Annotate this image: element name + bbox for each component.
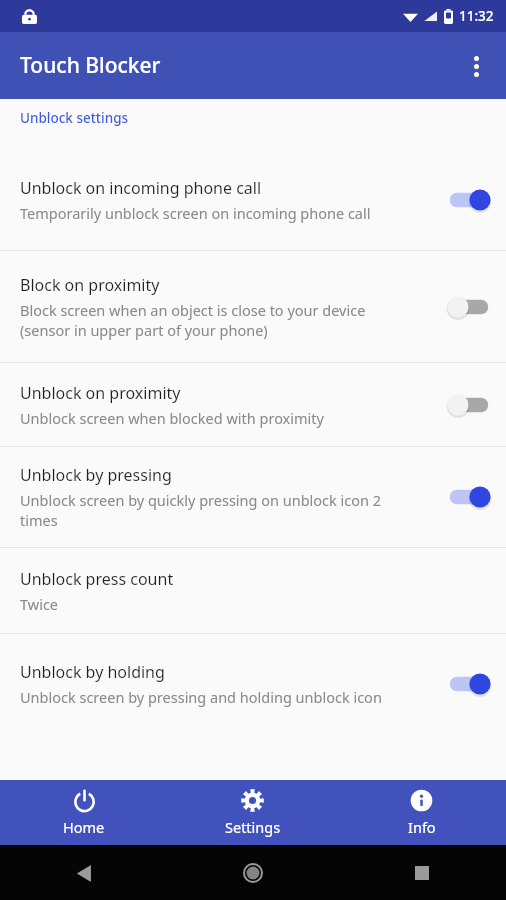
staticText: Unblock press count — [20, 568, 174, 590]
staticText: Unblock on proximity — [20, 382, 181, 404]
staticText: Block screen when an object is close to … — [20, 300, 418, 340]
staticText: Unblock screen when blocked with proximi… — [20, 408, 324, 428]
button[interactable]: Settings — [168, 780, 337, 845]
staticText: Unblock screen by pressing and holding u… — [20, 687, 382, 707]
button[interactable] — [432, 469, 506, 525]
button[interactable] — [432, 377, 506, 433]
button[interactable]: Back — [62, 851, 106, 895]
button[interactable] — [432, 656, 506, 712]
button[interactable]: Unblock by holding — [0, 634, 506, 734]
button[interactable]: Recents — [400, 851, 444, 895]
staticText: Settings — [225, 817, 281, 837]
button[interactable]: Block on proximity — [0, 251, 506, 362]
button[interactable]: Unblock press count — [0, 548, 506, 633]
button[interactable] — [432, 279, 506, 335]
staticText: Unblock screen by quickly pressing on un… — [20, 490, 418, 530]
button[interactable]: Info — [337, 780, 506, 845]
staticText: Unblock by pressing — [20, 464, 172, 486]
button[interactable]: Unblock by pressing — [0, 447, 506, 547]
button[interactable] — [432, 172, 506, 228]
staticText: Block on proximity — [20, 274, 160, 296]
button[interactable]: Unblock on incoming phone call — [0, 150, 506, 250]
staticText: Home — [63, 817, 105, 837]
staticText: 11:32 — [459, 7, 494, 25]
button[interactable]: More options — [454, 44, 498, 88]
staticText: Twice — [20, 594, 59, 614]
staticText: Unblock on incoming phone call — [20, 177, 262, 199]
button[interactable]: Home — [231, 851, 275, 895]
staticText: Touch Blocker — [20, 51, 161, 80]
button[interactable]: Home — [0, 780, 168, 845]
button[interactable]: Unblock on proximity — [0, 363, 506, 446]
staticText: Info — [408, 817, 436, 837]
staticText: Unblock by holding — [20, 661, 165, 683]
staticText: Unblock settings — [20, 109, 129, 127]
staticText: Temporarily unblock screen on incoming p… — [20, 203, 371, 223]
